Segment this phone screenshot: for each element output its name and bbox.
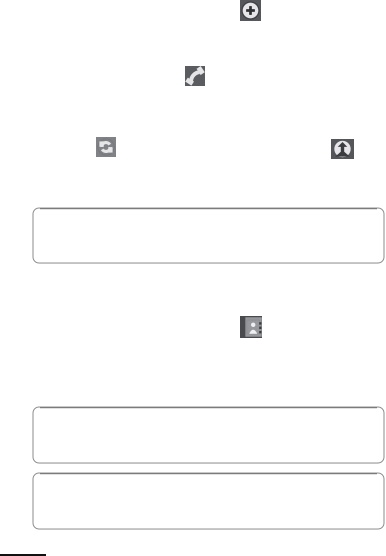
button[interactable]: Share — [331, 139, 354, 159]
button[interactable]: Contacts — [240, 316, 262, 338]
button[interactable]: Refresh — [96, 137, 116, 157]
button[interactable]: Call — [185, 66, 205, 86]
button[interactable]: Add — [240, 0, 261, 21]
